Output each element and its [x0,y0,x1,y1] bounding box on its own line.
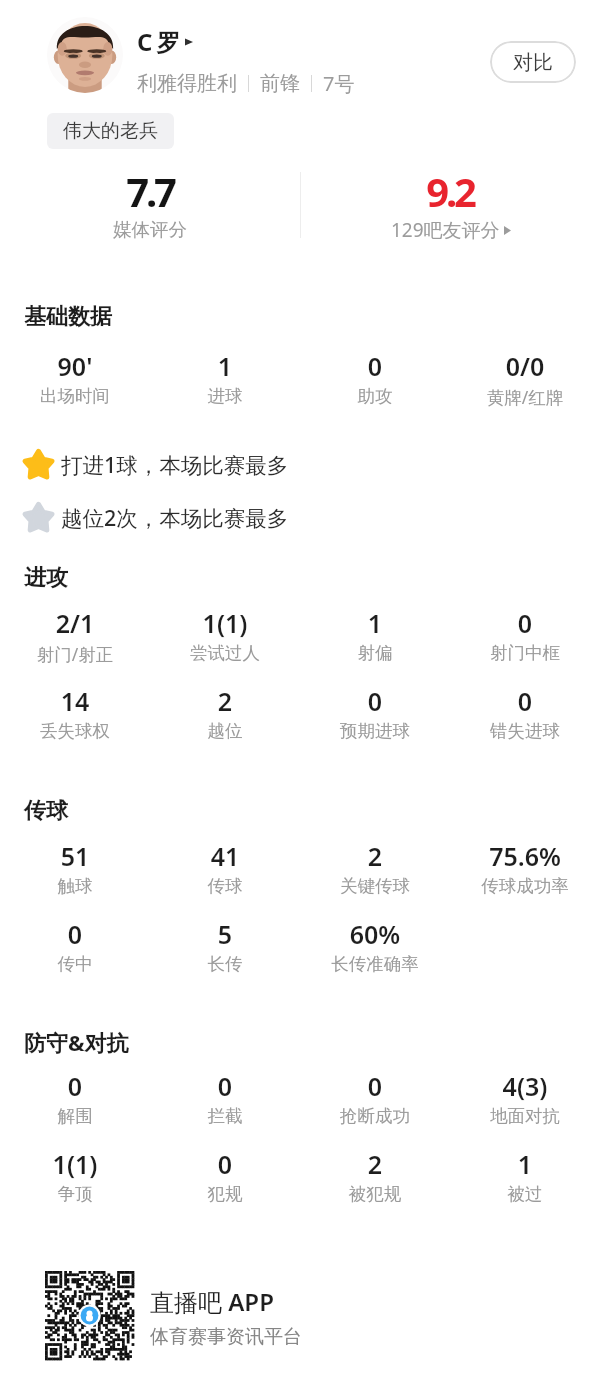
staticText: 1 [150,349,300,383]
staticText: 51 [0,839,150,873]
staticText: 尝试过人 [150,642,300,664]
staticText: 争顶 [0,1183,150,1205]
staticText: 1 [450,1147,600,1181]
staticText: 1(1) [0,1147,150,1181]
staticText: 基础数据 [24,303,112,331]
staticText: 黄牌/红牌 [450,385,600,409]
staticText: 进攻 [24,564,68,592]
staticText: 射门中框 [450,642,600,664]
staticText: 0 [150,1069,300,1103]
staticText: 0 [300,349,450,383]
staticText: 射门/射正 [0,642,150,666]
staticText: 长传 [150,953,300,975]
staticText: 7.7 [0,164,300,218]
staticText: 抢断成功 [300,1105,450,1127]
staticText: 2 [300,1147,450,1181]
staticText: 错失进球 [450,720,600,742]
staticText: 拦截 [150,1105,300,1127]
staticText: 传球成功率 [450,875,600,897]
staticText: 被犯规 [300,1183,450,1205]
staticText: 打进1球，本场比赛最多 [61,450,289,479]
staticText: 5 [150,917,300,951]
staticText: 直播吧 APP [150,1285,274,1318]
staticText: 关键传球 [300,875,450,897]
staticText: 传球 [150,875,300,897]
button[interactable]: 129吧友评分 [391,217,511,243]
button[interactable]: 对比 [490,41,576,83]
staticText: 传球 [24,797,68,825]
staticText: 75.6% [450,839,600,873]
staticText: 129吧友评分 [391,217,500,243]
staticText: 伟大的老兵 [63,119,158,143]
staticText: 0/0 [450,349,600,383]
staticText: 0 [450,606,600,640]
staticText: 90' [0,349,150,383]
staticText: 射偏 [300,642,450,664]
staticText: 出场时间 [0,385,150,407]
staticText: 前锋 [260,71,300,96]
staticText: 0 [0,917,150,951]
staticText: 9.2 [300,164,600,218]
staticText: 进球 [150,385,300,407]
button[interactable]: QR code [45,1271,134,1360]
staticText: 0 [300,684,450,718]
staticText: 1 [300,606,450,640]
staticText: 媒体评分 [0,218,300,241]
button[interactable]: C 罗 [137,25,193,58]
staticText: 2/1 [0,606,150,640]
staticText: 丢失球权 [0,720,150,742]
staticText: 解围 [0,1105,150,1127]
button[interactable]: 越位2次，本场比赛最多 [22,501,289,534]
button[interactable]: 打进1球，本场比赛最多 [22,448,289,481]
staticText: 4(3) [450,1069,600,1103]
staticText: 传中 [0,953,150,975]
staticText: 长传准确率 [300,953,450,975]
staticText: 41 [150,839,300,873]
staticText: 越位 [150,720,300,742]
staticText: 2 [150,684,300,718]
staticText: 触球 [0,875,150,897]
staticText: 60% [300,917,450,951]
staticText: 2 [300,839,450,873]
staticText: 助攻 [300,385,450,407]
staticText: 防守&对抗 [24,1027,129,1057]
staticText: 0 [0,1069,150,1103]
staticText: 预期进球 [300,720,450,742]
staticText: 地面对抗 [450,1105,600,1127]
staticText: 0 [300,1069,450,1103]
staticText: 犯规 [150,1183,300,1205]
staticText: 0 [150,1147,300,1181]
staticText: 0 [450,684,600,718]
staticText: 利雅得胜利 [137,71,237,96]
staticText: 对比 [513,50,553,75]
button[interactable]: 伟大的老兵 [47,113,174,149]
staticText: 体育赛事资讯平台 [150,1325,302,1349]
staticText: C 罗 [137,25,181,58]
staticText: 越位2次，本场比赛最多 [61,503,289,532]
staticText: 1(1) [150,606,300,640]
staticText: 被过 [450,1183,600,1205]
staticText: 14 [0,684,150,718]
staticText: 7号 [323,70,355,97]
button[interactable]: Player avatar [47,17,123,93]
